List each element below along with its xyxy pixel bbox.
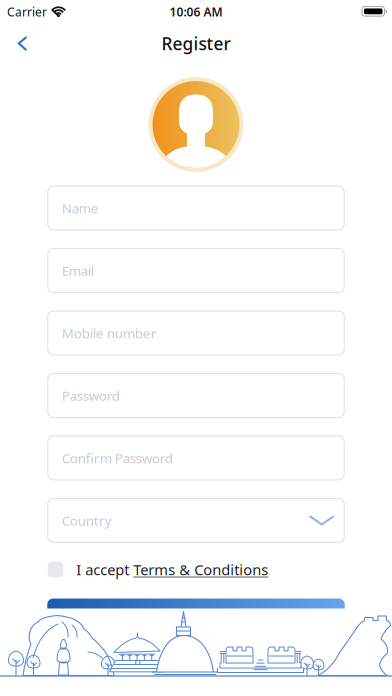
- staticText: Country: [62, 512, 112, 529]
- button[interactable]: Email: [48, 248, 344, 292]
- button[interactable]: Mobile number: [48, 311, 344, 355]
- button[interactable]: Register: [47, 598, 345, 642]
- button[interactable]: Name: [48, 186, 344, 230]
- staticText: Carrier: [7, 4, 47, 20]
- staticText: Name: [62, 199, 99, 217]
- staticText: Register: [161, 32, 230, 55]
- staticText: Password: [62, 387, 120, 404]
- staticText: I accept Terms & Conditions: [76, 560, 268, 579]
- button[interactable]: Confirm Password: [48, 436, 344, 480]
- staticText: Register: [164, 610, 228, 631]
- staticText: Confirm Password: [62, 449, 173, 467]
- button[interactable]: Country: [48, 498, 344, 542]
- button[interactable]: Back: [17, 36, 43, 51]
- button[interactable]: Accept terms checkbox: [48, 562, 63, 577]
- button[interactable]: Password: [48, 373, 344, 417]
- button[interactable]: Add profile photo: [148, 77, 243, 172]
- button[interactable]: I accept Terms & Conditions: [76, 560, 268, 579]
- staticText: Email: [62, 262, 94, 279]
- staticText: Mobile number: [62, 324, 157, 342]
- staticText: 10:06 AM: [169, 4, 222, 20]
